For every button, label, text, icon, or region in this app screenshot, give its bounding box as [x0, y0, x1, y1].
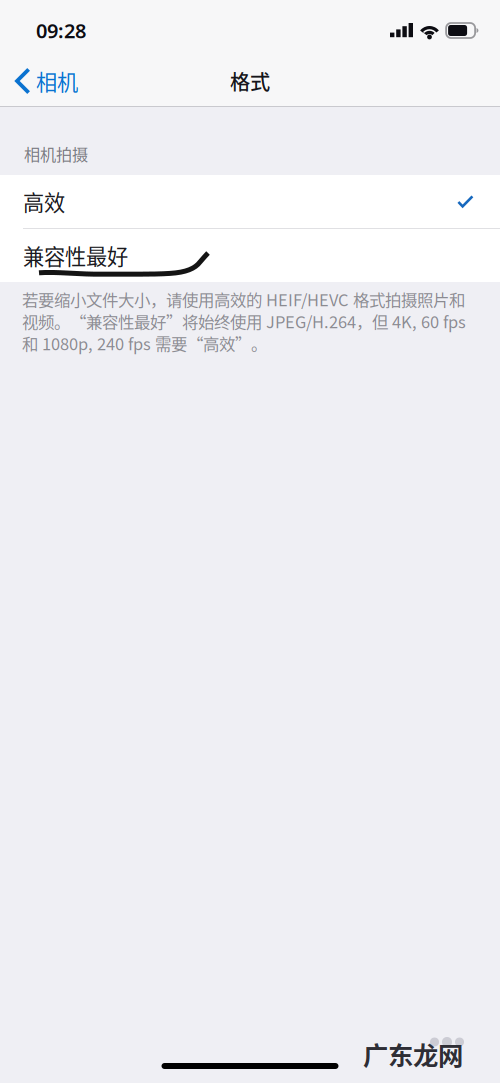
staticText: 相机拍摄 [24, 142, 88, 165]
staticText: 格式 [230, 66, 270, 96]
staticText: 高效 [23, 186, 65, 217]
button[interactable]: 兼容性最好 [0, 229, 500, 282]
staticText: 兼容性最好 [23, 240, 128, 271]
staticText: 相机 [36, 66, 78, 96]
button[interactable]: 相机 [0, 60, 90, 102]
button[interactable]: 高效 [0, 175, 500, 228]
staticText: 09:28 [36, 17, 86, 44]
staticText: 若要缩小文件大小，请使用高效的 HEIF/HEVC 格式拍摄照片和 [22, 287, 465, 311]
staticText: 视频。“兼容性最好”将始终使用 JPEG/H.264，但 4K, 60 fps [22, 309, 466, 333]
staticText: 和 1080p, 240 fps 需要“高效”。 [22, 331, 267, 355]
staticText: 广东龙网 [363, 1036, 463, 1072]
